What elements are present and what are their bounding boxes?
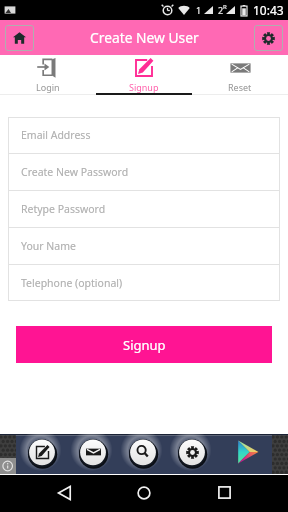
- button[interactable]: Login: [0, 55, 96, 95]
- staticText: Reset: [228, 81, 252, 93]
- staticText: Signup: [129, 81, 159, 93]
- button[interactable]: Email: [77, 436, 109, 468]
- button[interactable]: Compose: [26, 436, 58, 468]
- button[interactable]: Recents: [206, 476, 242, 509]
- staticText: Create New Password: [21, 165, 129, 179]
- button[interactable]: Signup: [16, 326, 272, 363]
- button[interactable]: Reset: [192, 55, 288, 95]
- staticText: Login: [36, 81, 60, 93]
- button[interactable]: Retype Password: [8, 191, 280, 227]
- button[interactable]: Search: [127, 436, 159, 468]
- button[interactable]: Home: [5, 25, 34, 51]
- staticText: Create New User: [90, 28, 199, 47]
- staticText: Your Name: [21, 239, 76, 253]
- button[interactable]: Create New Password: [8, 154, 280, 190]
- staticText: R: [223, 3, 227, 11]
- button[interactable]: Your Name: [8, 228, 280, 264]
- staticText: Retype Password: [21, 202, 106, 216]
- button[interactable]: Home: [126, 476, 162, 509]
- staticText: 10:43: [253, 2, 284, 18]
- button[interactable]: Back: [46, 476, 82, 509]
- staticText: Email Address: [21, 128, 91, 142]
- button[interactable]: Settings: [254, 25, 283, 51]
- button[interactable]: Signup: [96, 55, 192, 95]
- button[interactable]: Settings: [176, 436, 208, 468]
- button[interactable]: Email Address: [8, 117, 280, 153]
- staticText: Telephone (optional): [21, 276, 123, 290]
- staticText: Signup: [123, 336, 166, 354]
- staticText: 1: [196, 4, 202, 16]
- staticText: 2: [218, 4, 224, 16]
- button[interactable]: Telephone (optional): [8, 265, 280, 301]
- button[interactable]: Play Store: [231, 436, 263, 468]
